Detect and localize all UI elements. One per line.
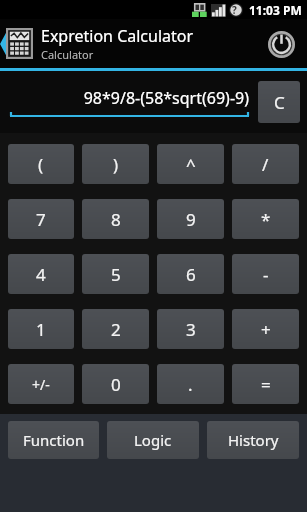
staticText: ) — [113, 153, 119, 176]
button[interactable]: 98*9/8-(58*sqrt(69)-9) — [10, 80, 249, 124]
staticText: 5 — [111, 263, 121, 286]
button[interactable]: +/- — [8, 364, 74, 404]
button[interactable]: 6 — [157, 254, 224, 294]
button[interactable]: 7 — [8, 199, 74, 239]
staticText: = — [261, 373, 271, 396]
button[interactable]: Logic — [107, 421, 199, 459]
button[interactable]: ^ — [157, 144, 224, 184]
staticText: 8 — [111, 208, 121, 231]
button[interactable]: 9 — [157, 199, 224, 239]
button[interactable]: 8 — [82, 199, 149, 239]
staticText: 9 — [186, 208, 196, 231]
button[interactable]: 4 — [8, 254, 74, 294]
button[interactable]: - — [232, 254, 299, 294]
staticText: 0 — [111, 373, 121, 396]
button[interactable]: / — [232, 144, 299, 184]
button[interactable]: + — [232, 309, 299, 349]
button[interactable]: = — [232, 364, 299, 404]
staticText: 98*9/8-(58*sqrt(69)-9) — [83, 87, 249, 109]
staticText: Logic — [134, 430, 172, 450]
staticText: History — [228, 430, 279, 450]
staticText: 6 — [186, 263, 196, 286]
staticText: 3 — [186, 318, 196, 341]
staticText: / — [262, 153, 269, 176]
staticText: ^ — [186, 153, 196, 176]
staticText: . — [188, 373, 193, 396]
button[interactable]: History — [207, 421, 299, 459]
button[interactable]: 3 — [157, 309, 224, 349]
staticText: + — [261, 318, 271, 341]
staticText: 1 — [36, 318, 46, 341]
staticText: ( — [38, 153, 44, 176]
button[interactable]: 1 — [8, 309, 74, 349]
staticText: Calculator — [41, 47, 94, 62]
staticText: ? — [232, 3, 237, 17]
button[interactable]: C — [258, 81, 300, 123]
button[interactable]: Function — [8, 421, 99, 459]
button[interactable]: 0 — [82, 364, 149, 404]
staticText: 2 — [111, 318, 121, 341]
staticText: Expretion Calculator — [41, 25, 194, 47]
staticText: 4 — [36, 263, 46, 286]
staticText: 11:03 PM — [249, 2, 302, 18]
button[interactable]: . — [157, 364, 224, 404]
button[interactable]: ( — [8, 144, 74, 184]
button[interactable]: Power — [259, 22, 303, 66]
staticText: * — [261, 208, 271, 231]
button[interactable]: 5 — [82, 254, 149, 294]
staticText: - — [263, 263, 269, 286]
button[interactable]: * — [232, 199, 299, 239]
staticText: Function — [23, 430, 85, 450]
staticText: +/- — [32, 375, 50, 394]
button[interactable]: 2 — [82, 309, 149, 349]
staticText: C — [274, 91, 285, 114]
staticText: 7 — [36, 208, 46, 231]
button[interactable]: ) — [82, 144, 149, 184]
